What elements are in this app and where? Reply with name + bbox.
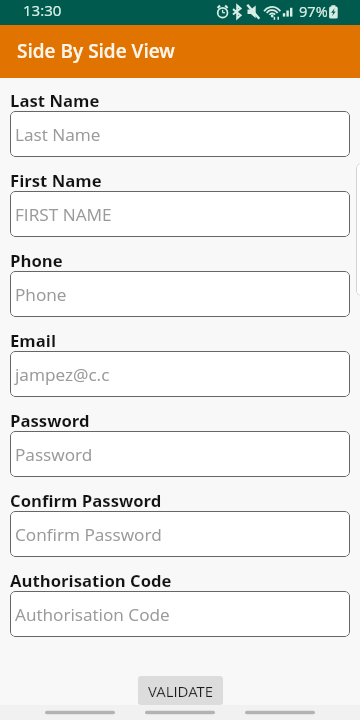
button[interactable]: Phone <box>10 271 350 317</box>
staticText: jampez@c.c <box>15 363 110 386</box>
staticText: Email <box>10 329 56 351</box>
button[interactable]: VALIDATE <box>138 676 223 705</box>
staticText: Password <box>10 409 90 431</box>
button[interactable]: Authorisation Code <box>10 591 350 637</box>
staticText: Confirm Password <box>15 523 162 546</box>
staticText: Authorisation Code <box>10 569 172 591</box>
button[interactable]: jampez@c.c <box>10 351 350 397</box>
staticText: Authorisation Code <box>15 603 170 626</box>
staticText: Confirm Password <box>10 489 162 511</box>
button[interactable]: Last Name <box>10 111 350 157</box>
staticText: Phone <box>10 249 63 271</box>
staticText: 97% <box>299 1 328 21</box>
staticText: Last Name <box>10 89 100 111</box>
staticText: Phone <box>15 283 67 306</box>
button[interactable]: FIRST NAME <box>10 191 350 237</box>
staticText: Password <box>15 443 93 466</box>
staticText: 13:30 <box>23 0 62 20</box>
staticText: Side By Side View <box>17 38 175 64</box>
staticText: VALIDATE <box>148 681 214 701</box>
button[interactable]: Confirm Password <box>10 511 350 557</box>
staticText: FIRST NAME <box>15 203 112 226</box>
button[interactable]: Password <box>10 431 350 477</box>
staticText: First Name <box>10 169 102 191</box>
staticText: Last Name <box>15 123 101 146</box>
